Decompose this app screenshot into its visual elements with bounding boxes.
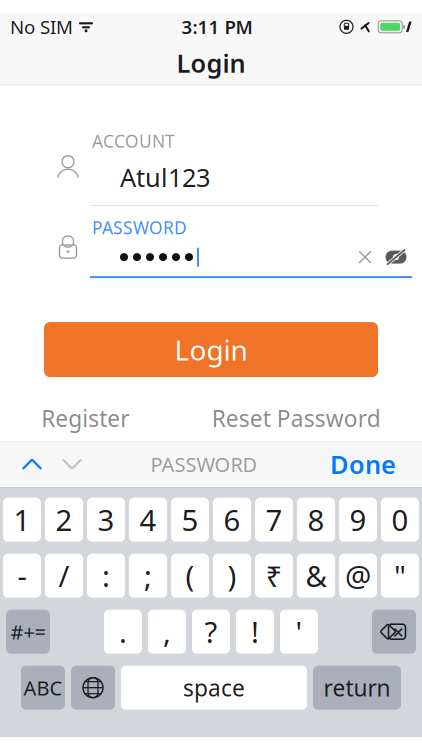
staticText: " xyxy=(394,556,406,595)
staticText: PASSWORD xyxy=(150,451,257,477)
button[interactable]: Done xyxy=(316,444,410,484)
button[interactable]: space xyxy=(121,666,307,710)
button[interactable]: ! xyxy=(236,610,274,654)
button[interactable]: 2 xyxy=(45,498,83,542)
button[interactable]: / xyxy=(45,554,83,598)
staticText: 8 xyxy=(307,500,324,539)
button[interactable]: 7 xyxy=(255,498,293,542)
button[interactable]: 9 xyxy=(339,498,377,542)
staticText: return xyxy=(323,673,390,703)
staticText: 7 xyxy=(265,500,282,539)
staticText: 4 xyxy=(139,500,156,539)
staticText: ACCOUNT xyxy=(92,129,175,152)
staticText: , xyxy=(163,612,171,651)
staticText: ' xyxy=(295,612,302,651)
button[interactable]: 3 xyxy=(87,498,125,542)
staticText: Login xyxy=(174,331,247,368)
button[interactable]: Delete xyxy=(372,610,416,654)
button[interactable]: @ xyxy=(339,554,377,598)
button[interactable]: ? xyxy=(192,610,230,654)
staticText: Register xyxy=(41,403,129,433)
button[interactable]: ( xyxy=(171,554,209,598)
button[interactable]: 6 xyxy=(213,498,251,542)
button[interactable]: ₹ xyxy=(255,554,293,598)
staticText: 1 xyxy=(13,500,30,539)
button[interactable]: ; xyxy=(129,554,167,598)
staticText: 9 xyxy=(349,500,366,539)
staticText: ; xyxy=(144,556,152,595)
staticText: 3:11 PM xyxy=(181,14,252,39)
staticText: & xyxy=(305,556,326,595)
button[interactable]: ABC xyxy=(21,666,65,710)
staticText: Login xyxy=(176,46,245,80)
button[interactable]: Previous field xyxy=(12,444,52,484)
button[interactable]: - xyxy=(3,554,41,598)
button[interactable]: 8 xyxy=(297,498,335,542)
button[interactable]: Next field xyxy=(52,444,92,484)
button[interactable]: ' xyxy=(280,610,318,654)
button[interactable]: Clear password xyxy=(350,244,380,270)
staticText: ( xyxy=(185,556,194,595)
staticText: No SIM xyxy=(10,14,73,39)
button[interactable]: . xyxy=(104,610,142,654)
button[interactable]: : xyxy=(87,554,125,598)
button[interactable]: Login xyxy=(44,322,378,377)
button[interactable]: #+= xyxy=(6,610,50,654)
button[interactable]: " xyxy=(381,554,419,598)
staticText: #+= xyxy=(10,618,45,645)
staticText: @ xyxy=(345,556,371,595)
staticText: 6 xyxy=(223,500,240,539)
staticText: 0 xyxy=(391,500,408,539)
staticText: 3 xyxy=(97,500,114,539)
staticText: Reset Password xyxy=(212,403,381,433)
button[interactable]: return xyxy=(313,666,401,710)
button[interactable]: 0 xyxy=(381,498,419,542)
staticText: - xyxy=(17,556,26,595)
staticText: ? xyxy=(204,612,217,651)
button[interactable]: 4 xyxy=(129,498,167,542)
button[interactable]: Next keyboard xyxy=(71,666,115,710)
button[interactable]: ) xyxy=(213,554,251,598)
button[interactable]: 1 xyxy=(3,498,41,542)
staticText: space xyxy=(183,673,245,703)
staticText: / xyxy=(58,556,69,595)
button[interactable]: , xyxy=(148,610,186,654)
staticText: : xyxy=(102,556,110,595)
button[interactable]: Register xyxy=(25,395,145,441)
staticText: ! xyxy=(251,612,259,651)
button[interactable]: Show password xyxy=(380,244,412,270)
staticText: 5 xyxy=(181,500,198,539)
staticText: ) xyxy=(227,556,236,595)
staticText: Done xyxy=(330,447,396,481)
staticText: Atul123 xyxy=(120,160,210,194)
staticText: ₹ xyxy=(265,556,282,595)
staticText: . xyxy=(119,612,127,651)
staticText: × xyxy=(392,618,403,645)
button[interactable]: Reset Password xyxy=(196,395,397,441)
staticText: 2 xyxy=(55,500,72,539)
staticText: PASSWORD xyxy=(92,216,187,239)
button[interactable]: 5 xyxy=(171,498,209,542)
staticText: ABC xyxy=(23,674,62,701)
button[interactable]: & xyxy=(297,554,335,598)
